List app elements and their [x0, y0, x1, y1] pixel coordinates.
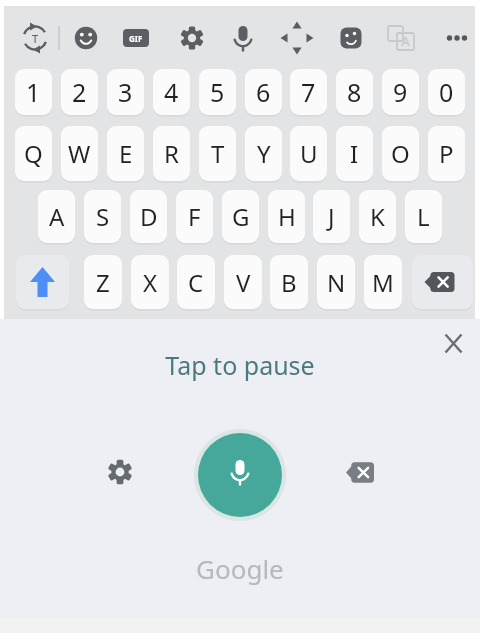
staticText: F	[188, 200, 201, 233]
button[interactable]: 6	[245, 69, 282, 115]
staticText: O	[391, 137, 410, 170]
button[interactable]: W	[61, 126, 98, 181]
button[interactable]	[382, 16, 426, 60]
staticText: K	[370, 200, 385, 233]
button[interactable]: 5	[199, 69, 236, 115]
button[interactable]: C	[177, 255, 215, 309]
button[interactable]: G	[222, 190, 259, 243]
button[interactable]: O	[382, 126, 419, 181]
button[interactable]	[329, 16, 373, 60]
button[interactable]	[64, 16, 108, 60]
button[interactable]: GIF	[123, 29, 149, 47]
staticText: A	[49, 200, 65, 233]
staticText: Tap to pause	[165, 348, 315, 382]
staticText: P	[439, 137, 454, 170]
staticText: 6	[256, 75, 271, 109]
button[interactable]	[16, 255, 69, 309]
staticText: 5	[210, 75, 225, 109]
button[interactable]: N	[317, 255, 355, 309]
staticText: L	[417, 200, 430, 233]
staticText: Y	[257, 137, 271, 170]
staticText: 8	[347, 75, 362, 109]
button[interactable]	[98, 450, 142, 494]
staticText: T	[211, 137, 225, 170]
staticText: B	[281, 266, 297, 299]
staticText: 0	[439, 75, 454, 109]
staticText: 2	[72, 75, 87, 109]
button[interactable]: X	[131, 255, 169, 309]
staticText: 3	[118, 75, 133, 109]
button[interactable]: S	[84, 190, 121, 243]
button[interactable]: V	[224, 255, 262, 309]
button[interactable]: B	[270, 255, 308, 309]
button[interactable]: R	[153, 126, 190, 181]
staticText: R	[164, 137, 179, 170]
button[interactable]	[275, 16, 319, 60]
button[interactable]: 9	[382, 69, 419, 115]
staticText: Google	[196, 551, 284, 586]
button[interactable]: 3	[107, 69, 144, 115]
button[interactable]: Q	[15, 126, 52, 181]
staticText: 7	[301, 75, 316, 109]
button[interactable]: T	[199, 126, 236, 181]
staticText: 4	[164, 75, 179, 109]
staticText: Q	[24, 137, 43, 170]
button[interactable]: M	[364, 255, 402, 309]
button[interactable]	[338, 450, 382, 494]
staticText: GIF	[129, 33, 143, 44]
button[interactable]: I	[336, 126, 373, 181]
staticText: M	[372, 266, 394, 299]
button[interactable]: A	[38, 190, 75, 243]
button[interactable]: L	[405, 190, 442, 243]
staticText: E	[119, 137, 133, 170]
staticText: X	[143, 266, 158, 299]
button[interactable]: 7	[290, 69, 327, 115]
staticText: I	[350, 137, 359, 170]
staticText: T	[32, 31, 39, 46]
staticText: N	[327, 266, 346, 299]
staticText: D	[140, 200, 158, 233]
staticText: U	[300, 137, 318, 170]
button[interactable]	[412, 255, 473, 309]
button[interactable]	[193, 428, 287, 522]
staticText: S	[96, 200, 110, 233]
staticText: G	[232, 200, 250, 233]
staticText: 1	[26, 75, 41, 109]
button[interactable]: J	[313, 190, 350, 243]
staticText: 9	[393, 75, 408, 109]
button[interactable]: 1	[15, 69, 52, 115]
staticText: W	[68, 137, 91, 170]
button[interactable]	[170, 16, 214, 60]
button[interactable]	[441, 331, 466, 356]
button[interactable]: 4	[153, 69, 190, 115]
button[interactable]: P	[428, 126, 465, 181]
staticText: V	[236, 266, 251, 299]
staticText: Z	[96, 266, 110, 299]
button[interactable]	[435, 16, 479, 60]
button[interactable]: Y	[245, 126, 282, 181]
button[interactable]: E	[107, 126, 144, 181]
staticText: C	[188, 266, 204, 299]
button[interactable]	[221, 16, 265, 60]
button[interactable]: F	[176, 190, 213, 243]
staticText: J	[328, 200, 335, 233]
button[interactable]: 8	[336, 69, 373, 115]
button[interactable]: H	[268, 190, 305, 243]
button[interactable]: K	[359, 190, 396, 243]
button[interactable]: 0	[428, 69, 465, 115]
button[interactable]	[13, 16, 57, 60]
button[interactable]: U	[290, 126, 327, 181]
staticText: H	[278, 200, 296, 233]
button[interactable]: D	[130, 190, 167, 243]
button[interactable]: Z	[84, 255, 122, 309]
button[interactable]: 2	[61, 69, 98, 115]
